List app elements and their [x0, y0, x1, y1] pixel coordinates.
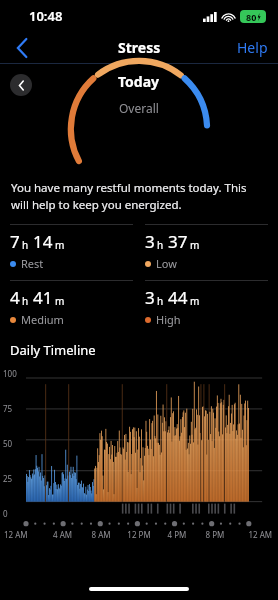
staticText: 25 — [3, 473, 13, 484]
staticText: 12 PM — [120, 529, 158, 540]
staticText: Medium — [21, 312, 64, 327]
staticText: High — [156, 312, 181, 327]
staticText: 44 — [168, 286, 188, 309]
staticText: m — [190, 294, 200, 308]
button[interactable]: Previous day — [10, 74, 32, 96]
staticText: 41 — [33, 286, 53, 309]
staticText: h — [157, 294, 164, 308]
staticText: m — [55, 238, 65, 252]
staticText: 7 — [10, 230, 20, 253]
button[interactable]: 3 — [145, 280, 268, 327]
staticText: Today — [118, 72, 160, 91]
staticText: 75 — [3, 403, 13, 414]
staticText: 50 — [3, 438, 13, 449]
staticText: Daily Timeline — [10, 341, 96, 359]
staticText: Overall — [119, 100, 159, 116]
staticText: h — [157, 238, 164, 252]
staticText: 8 PM — [196, 529, 234, 540]
staticText: Help — [237, 38, 268, 57]
staticText: 0 — [3, 508, 8, 519]
button[interactable]: 3 — [145, 224, 268, 271]
staticText: 4 — [10, 286, 20, 309]
staticText: m — [55, 294, 65, 308]
button[interactable]: Help — [237, 38, 268, 57]
staticText: 3 — [145, 230, 155, 253]
staticText: 100 — [3, 368, 17, 379]
staticText: 80 — [246, 11, 257, 23]
button[interactable]: 7 — [10, 224, 133, 271]
staticText: 8 AM — [82, 529, 120, 540]
staticText: 3 — [145, 286, 155, 309]
staticText: Low — [156, 256, 177, 271]
staticText: h — [22, 294, 29, 308]
staticText: 37 — [168, 230, 188, 253]
staticText: Rest — [21, 256, 44, 271]
staticText: 4 PM — [158, 529, 196, 540]
staticText: 12 AM — [234, 529, 272, 540]
staticText: Stress — [118, 38, 161, 57]
button[interactable]: 4 — [10, 280, 133, 327]
staticText: m — [190, 238, 200, 252]
staticText: 12 AM — [4, 529, 43, 540]
staticText: 14 — [33, 230, 53, 253]
staticText: You have many restful moments today. Thi… — [11, 180, 267, 212]
staticText: h — [22, 238, 29, 252]
staticText: 4 AM — [43, 529, 82, 540]
staticText: 10:48 — [29, 7, 63, 25]
button[interactable]: Back — [0, 32, 44, 63]
